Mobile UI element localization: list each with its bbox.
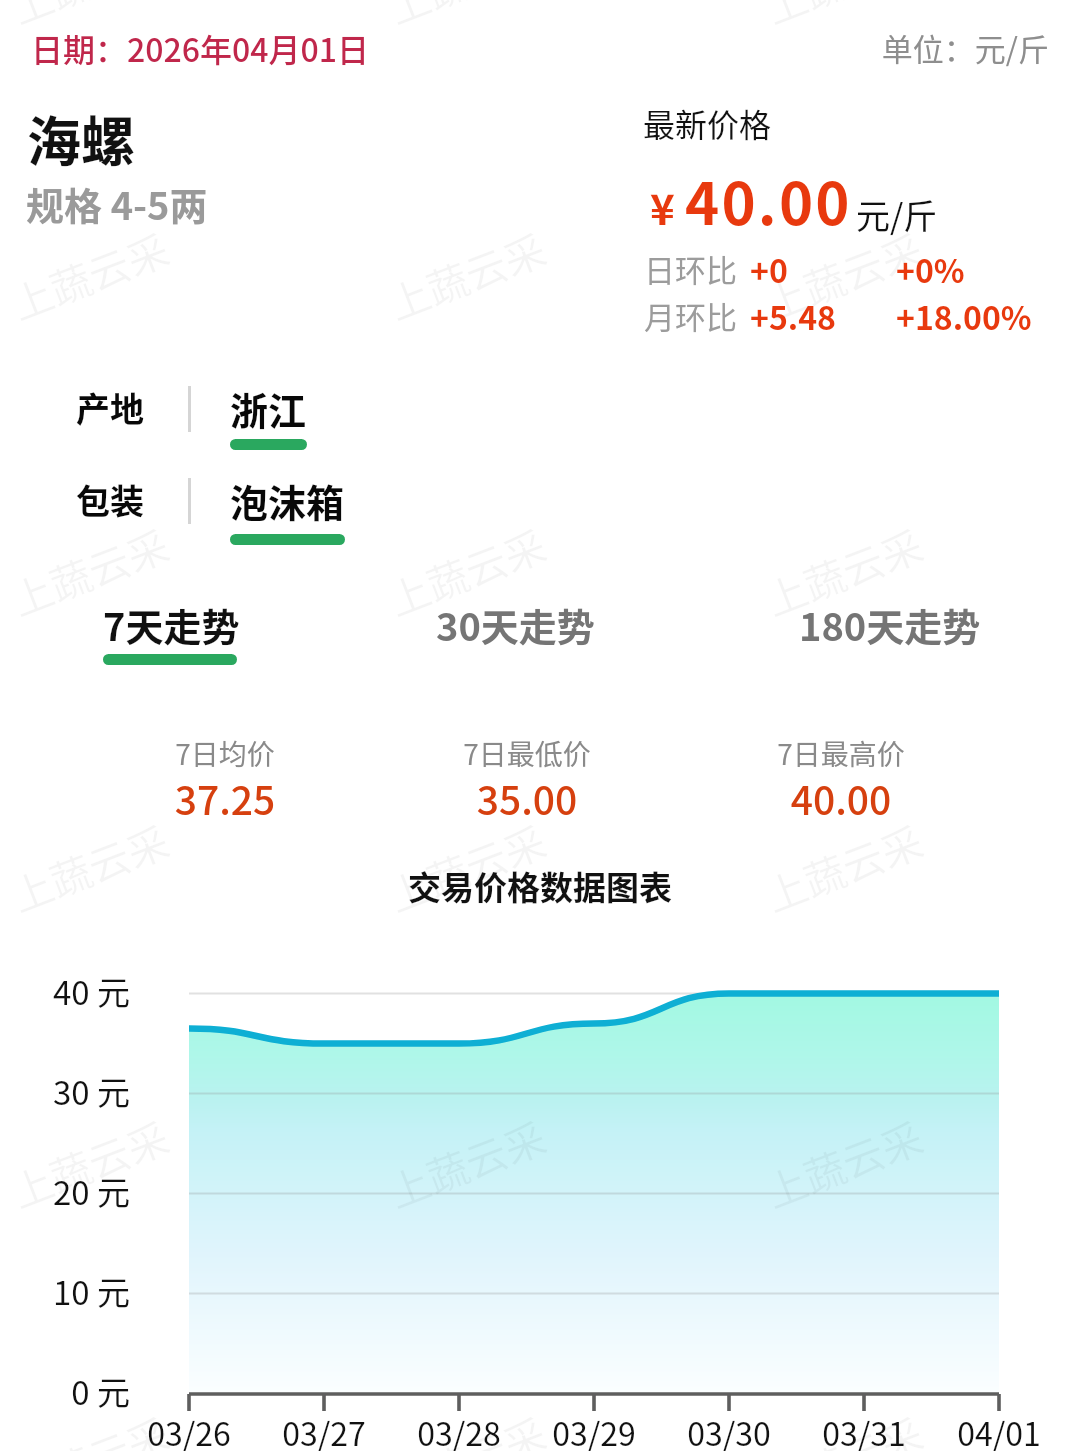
staticText: 月环比 — [644, 293, 737, 337]
staticText: 40.00 — [685, 158, 852, 242]
button[interactable]: 180天走势 — [799, 597, 981, 654]
staticText: 日期：2026年04月01日 — [31, 25, 369, 71]
staticText: 03/26 — [99, 1409, 279, 1451]
button[interactable]: 产地 — [70, 381, 410, 461]
staticText: +0 — [750, 246, 788, 290]
staticText: 03/28 — [369, 1409, 549, 1451]
staticText: 37.25 — [75, 770, 375, 826]
staticText: ¥ — [650, 176, 675, 237]
staticText: 海螺 — [27, 99, 135, 177]
staticText: 元/斤 — [856, 190, 938, 239]
staticText: 20 元 — [0, 1167, 130, 1215]
staticText: 0 元 — [0, 1367, 130, 1415]
staticText: 03/29 — [504, 1409, 684, 1451]
staticText: +5.48 — [750, 293, 836, 337]
staticText: 单位：元/斤 — [0, 25, 1049, 70]
staticText: 7日均价 — [75, 733, 375, 774]
staticText: 03/31 — [774, 1409, 954, 1451]
staticText: 03/30 — [639, 1409, 819, 1451]
staticText: 最新价格 — [643, 100, 772, 146]
staticText: 交易价格数据图表 — [408, 862, 672, 910]
staticText: 包装 — [76, 475, 144, 524]
button[interactable]: 7日最低价 — [377, 733, 677, 830]
staticText: +0% — [896, 246, 965, 290]
button[interactable]: 月环比 — [644, 292, 1044, 336]
staticText: 180天走势 — [799, 597, 981, 652]
staticText: +18.00% — [896, 293, 1032, 337]
staticText: 7日最高价 — [691, 733, 991, 774]
staticText: 03/27 — [234, 1409, 414, 1451]
staticText: 泡沫箱 — [230, 473, 345, 528]
button[interactable]: 日环比 — [644, 245, 1044, 289]
other: 7 day price trend chart — [0, 0, 1080, 1451]
staticText: 35.00 — [377, 770, 677, 826]
staticText: 产地 — [76, 383, 144, 432]
button[interactable]: 7日最高价 — [691, 733, 991, 830]
staticText: 7天走势 — [103, 597, 240, 652]
button[interactable]: 7天走势 — [103, 597, 240, 665]
button[interactable]: 7日均价 — [75, 733, 375, 830]
button[interactable]: 30天走势 — [436, 597, 595, 654]
staticText: 规格 4-5两 — [26, 176, 208, 231]
staticText: 7日最低价 — [377, 733, 677, 774]
button[interactable]: 包装 — [70, 473, 410, 553]
staticText: 04/01 — [909, 1409, 1080, 1451]
staticText: 日环比 — [644, 246, 737, 290]
staticText: 10 元 — [0, 1267, 130, 1315]
staticText: 40 元 — [0, 967, 130, 1015]
staticText: 30 元 — [0, 1067, 130, 1115]
staticText: 40.00 — [691, 770, 991, 826]
staticText: 浙江 — [230, 381, 307, 436]
staticText: 30天走势 — [436, 597, 595, 652]
